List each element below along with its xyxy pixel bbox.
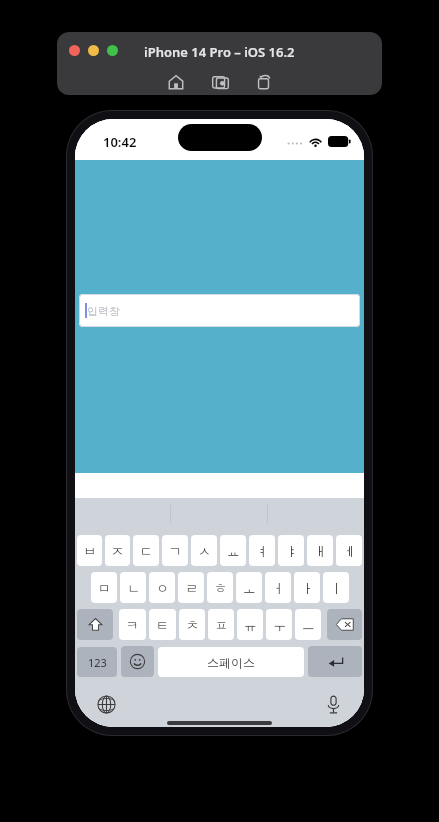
button[interactable]: ㅠ — [237, 609, 263, 640]
button[interactable]: Dictation — [320, 691, 346, 717]
button[interactable]: Screenshot — [206, 68, 234, 95]
staticText: ㅗ — [243, 580, 256, 596]
staticText: ㄹ — [185, 580, 198, 596]
staticText: ㅣ — [330, 580, 343, 596]
staticText: ㄱ — [169, 543, 182, 559]
staticText: ㅓ — [272, 580, 285, 596]
button[interactable]: ㅇ — [149, 572, 175, 603]
button[interactable]: Shift — [77, 609, 113, 640]
staticText: ㅠ — [244, 617, 257, 633]
staticText: ㅋ — [126, 617, 139, 633]
button[interactable]: ㅅ — [191, 535, 217, 566]
button[interactable]: ㅗ — [236, 572, 262, 603]
button[interactable]: ㅂ — [77, 535, 102, 566]
staticText: 123 — [88, 655, 107, 670]
button[interactable]: ㄱ — [162, 535, 188, 566]
button[interactable]: ㅎ — [207, 572, 233, 603]
button[interactable]: ㅍ — [208, 609, 234, 640]
button[interactable]: ㅐ — [307, 535, 333, 566]
staticText: ㅛ — [227, 543, 240, 559]
button[interactable]: 입력창 — [79, 294, 360, 327]
staticText: ㅐ — [314, 543, 327, 559]
staticText: ㅅ — [198, 543, 211, 559]
staticText: ㅔ — [343, 543, 356, 559]
staticText: iPhone 14 Pro – iOS 16.2 — [144, 43, 295, 61]
button[interactable]: ㅜ — [266, 609, 292, 640]
button[interactable]: Emoji — [121, 646, 154, 677]
staticText: ㅌ — [156, 617, 169, 633]
staticText: ㄷ — [140, 543, 153, 559]
button[interactable]: ㅊ — [179, 609, 205, 640]
button[interactable]: ㅛ — [220, 535, 246, 566]
button[interactable] — [88, 45, 99, 56]
button[interactable]: ㄹ — [178, 572, 204, 603]
button[interactable]: ㅈ — [105, 535, 130, 566]
staticText: ㅜ — [273, 617, 286, 633]
staticText: ㅡ — [302, 617, 315, 633]
button[interactable]: ㅡ — [295, 609, 321, 640]
staticText: ㅂ — [83, 543, 96, 559]
button[interactable]: ㅌ — [149, 609, 176, 640]
staticText: ㄴ — [127, 580, 140, 596]
button[interactable]: ㅣ — [323, 572, 349, 603]
button[interactable]: ㅁ — [91, 572, 117, 603]
staticText: ㅍ — [215, 617, 228, 633]
staticText: 입력창 — [87, 304, 120, 318]
button[interactable]: ㅋ — [119, 609, 146, 640]
button[interactable]: 스페이스 — [158, 647, 304, 677]
button[interactable]: Change keyboard — [93, 691, 119, 717]
staticText: 10:42 — [103, 133, 137, 151]
staticText: ㅁ — [98, 580, 111, 596]
staticText: ㅎ — [214, 580, 227, 596]
button[interactable]: Rotate — [250, 68, 278, 95]
button[interactable] — [69, 45, 80, 56]
staticText: ㅇ — [156, 580, 169, 596]
staticText: ㅏ — [301, 580, 314, 596]
button[interactable]: Backspace — [327, 609, 362, 640]
button[interactable] — [107, 45, 118, 56]
staticText: ㅈ — [111, 543, 124, 559]
button[interactable]: ㅕ — [249, 535, 275, 566]
button[interactable]: 123 — [77, 647, 117, 677]
button[interactable]: ㅑ — [278, 535, 304, 566]
button[interactable]: ㄷ — [133, 535, 159, 566]
staticText: ㅑ — [285, 543, 298, 559]
button[interactable]: Return — [308, 646, 362, 677]
button[interactable]: ㅓ — [265, 572, 291, 603]
button[interactable]: Home — [162, 68, 190, 95]
staticText: ㅊ — [186, 617, 199, 633]
button[interactable]: ㄴ — [120, 572, 146, 603]
button[interactable]: ㅔ — [336, 535, 362, 566]
staticText: ㅕ — [256, 543, 269, 559]
staticText: 스페이스 — [207, 655, 255, 670]
button[interactable]: ㅏ — [294, 572, 320, 603]
